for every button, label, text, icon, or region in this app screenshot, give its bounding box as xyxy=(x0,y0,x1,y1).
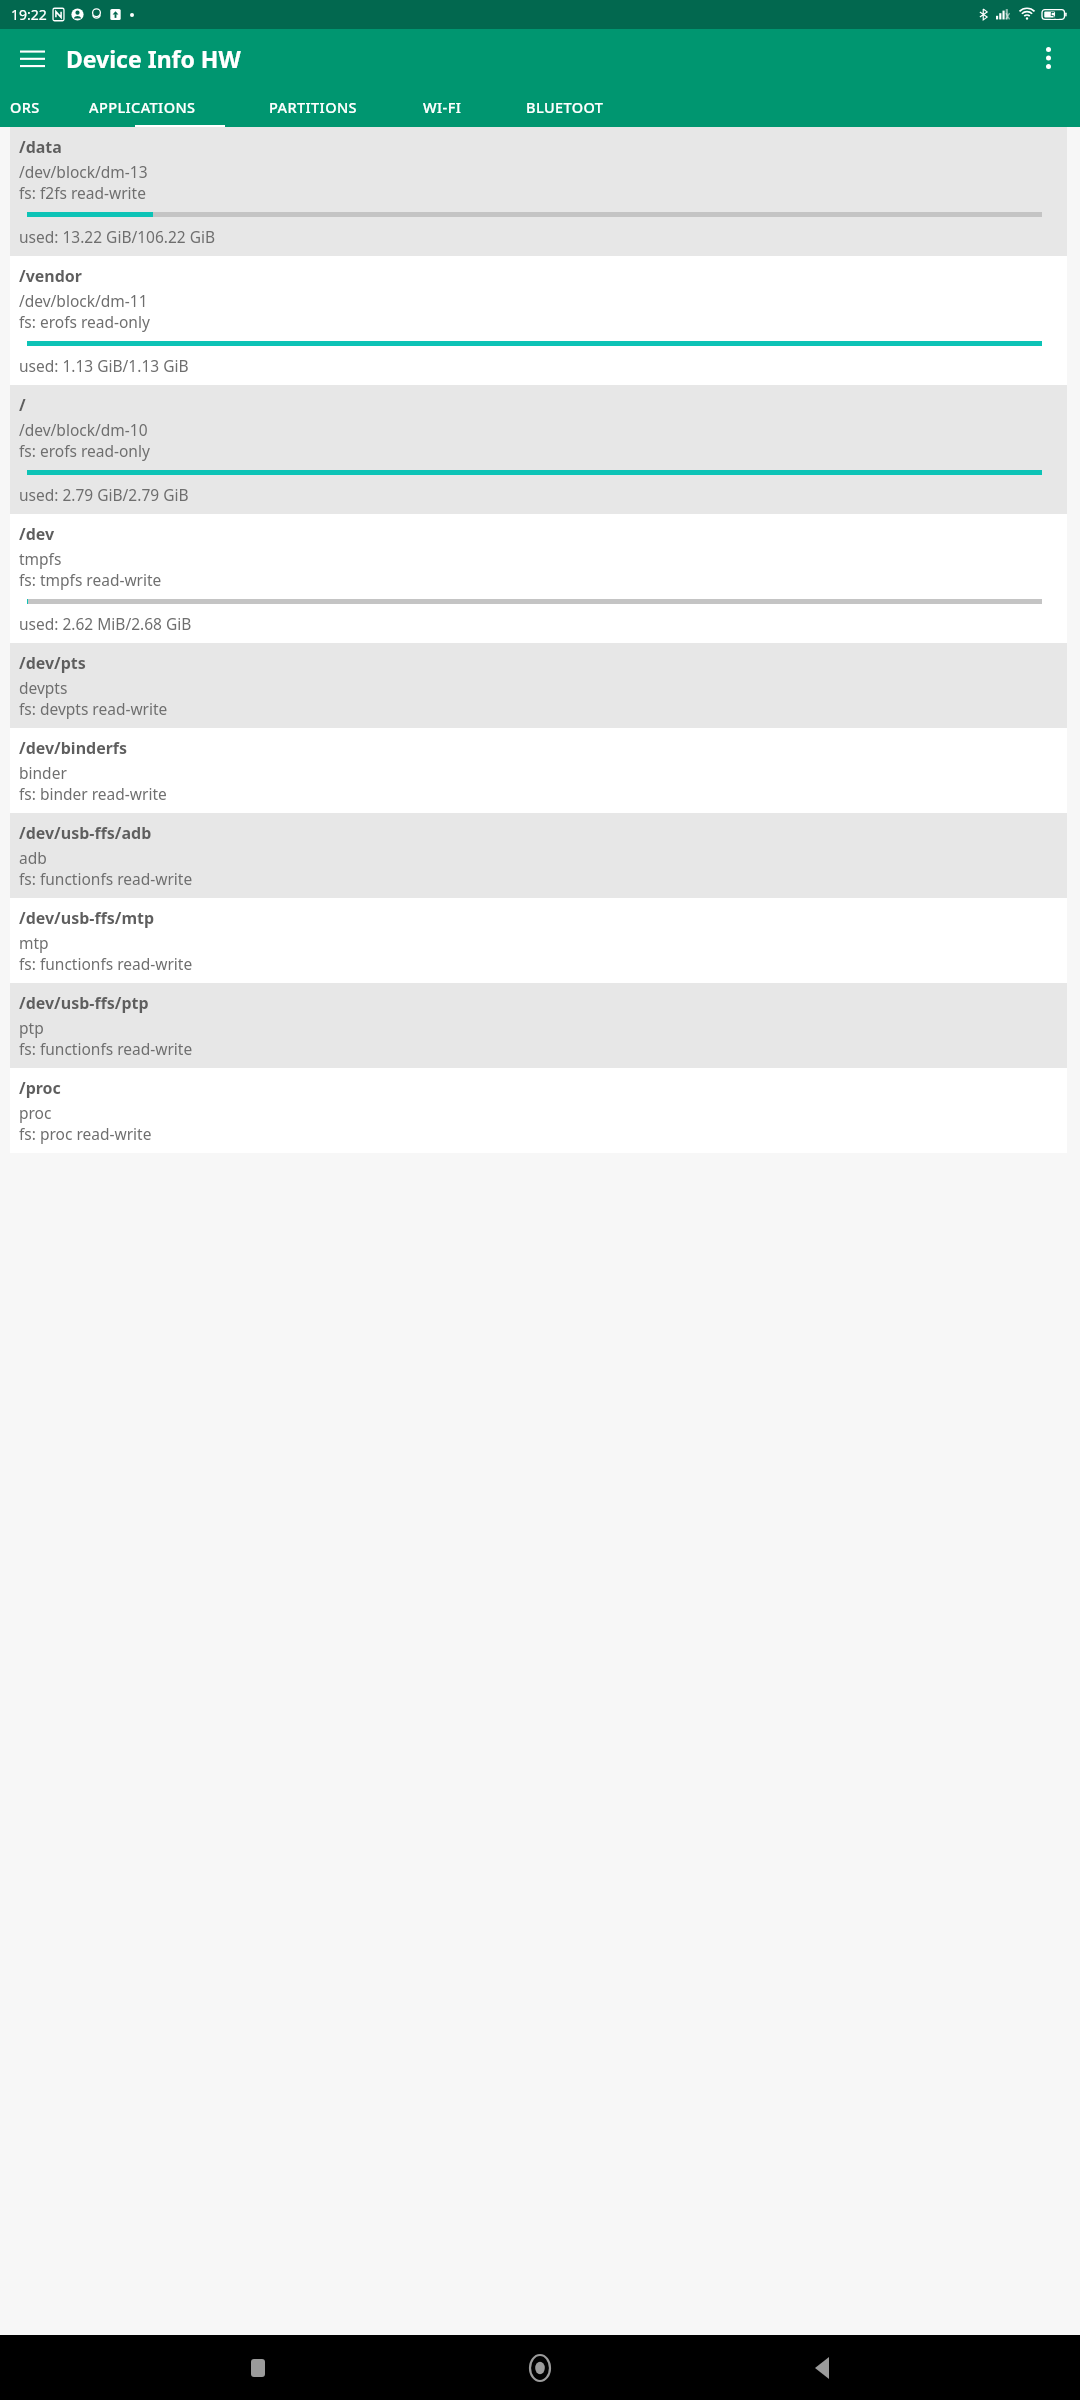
button[interactable]: / xyxy=(10,385,1067,514)
button[interactable]: BLUETOOT xyxy=(495,87,635,127)
staticText: fs: functionfs read-write xyxy=(19,953,193,974)
staticText: BLUETOOT xyxy=(526,97,604,117)
staticText: fs: proc read-write xyxy=(19,1123,152,1144)
staticText: fs: binder read-write xyxy=(19,783,167,804)
button[interactable]: /vendor xyxy=(10,256,1067,385)
staticText: fs: erofs read-only xyxy=(19,440,150,461)
staticText: fs: devpts read-write xyxy=(19,698,168,719)
staticText: /vendor xyxy=(19,265,82,287)
staticText: used: 13.22 GiB/106.22 GiB xyxy=(19,226,216,247)
button[interactable]: /dev/usb-ffs/mtp xyxy=(10,898,1067,983)
button[interactable]: /proc xyxy=(10,1068,1067,1153)
staticText: used: 1.13 GiB/1.13 GiB xyxy=(19,355,189,376)
staticText: PARTITIONS xyxy=(269,97,357,117)
button[interactable]: Recent apps xyxy=(234,2344,282,2392)
button[interactable]: /dev/usb-ffs/adb xyxy=(10,813,1067,898)
button[interactable]: /dev/usb-ffs/ptp xyxy=(10,983,1067,1068)
staticText: proc xyxy=(19,1102,52,1123)
staticText: adb xyxy=(19,847,47,868)
staticText: /dev/block/dm-10 xyxy=(19,419,148,440)
staticText: /proc xyxy=(19,1077,61,1099)
staticText: Device Info HW xyxy=(66,43,241,74)
staticText: /data xyxy=(19,136,62,158)
staticText: /dev/block/dm-13 xyxy=(19,161,148,182)
button[interactable]: Back xyxy=(798,2344,846,2392)
button[interactable]: Open navigation drawer xyxy=(8,34,56,82)
staticText: tmpfs xyxy=(19,548,62,569)
staticText: fs: erofs read-only xyxy=(19,311,150,332)
staticText: devpts xyxy=(19,677,68,698)
staticText: APPLICATIONS xyxy=(89,97,196,117)
staticText: /dev xyxy=(19,523,55,545)
staticText: WI-FI xyxy=(423,97,462,117)
button[interactable]: PARTITIONS xyxy=(235,87,390,127)
button[interactable]: /dev xyxy=(10,514,1067,643)
staticText: used: 2.79 GiB/2.79 GiB xyxy=(19,484,189,505)
staticText: fs: f2fs read-write xyxy=(19,182,146,203)
staticText: used: 2.62 MiB/2.68 GiB xyxy=(19,613,192,634)
button[interactable]: Home xyxy=(516,2344,564,2392)
staticText: fs: functionfs read-write xyxy=(19,1038,193,1059)
staticText: 55 xyxy=(1050,9,1061,21)
button[interactable]: ORS xyxy=(0,87,49,127)
staticText: fs: tmpfs read-write xyxy=(19,569,162,590)
button[interactable]: /dev/pts xyxy=(10,643,1067,728)
staticText: binder xyxy=(19,762,67,783)
staticText: fs: functionfs read-write xyxy=(19,868,193,889)
button[interactable]: More options xyxy=(1024,34,1072,82)
staticText: 19:22 xyxy=(11,5,47,24)
button[interactable]: APPLICATIONS xyxy=(49,87,235,127)
button[interactable]: WI-FI xyxy=(390,87,495,127)
staticText: /dev/usb-ffs/adb xyxy=(19,822,152,844)
staticText: /dev/pts xyxy=(19,652,86,674)
staticText: /dev/block/dm-11 xyxy=(19,290,148,311)
staticText: ptp xyxy=(19,1017,44,1038)
staticText: /dev/usb-ffs/mtp xyxy=(19,907,155,929)
button[interactable]: /dev/binderfs xyxy=(10,728,1067,813)
staticText: ORS xyxy=(10,97,40,117)
button[interactable]: /data xyxy=(10,127,1067,256)
staticText: mtp xyxy=(19,932,49,953)
staticText: / xyxy=(19,394,26,416)
staticText: /dev/binderfs xyxy=(19,737,128,759)
staticText: /dev/usb-ffs/ptp xyxy=(19,992,149,1014)
